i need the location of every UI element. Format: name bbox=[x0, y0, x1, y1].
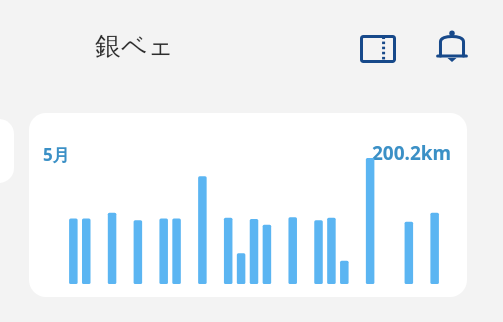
staticText: 5月 bbox=[43, 143, 70, 166]
button[interactable]: Diary bbox=[352, 23, 404, 75]
button[interactable]: Notifications bbox=[426, 21, 478, 73]
button[interactable] bbox=[0, 119, 14, 183]
staticText: 200.2km bbox=[372, 140, 452, 166]
staticText: 銀ベェ bbox=[95, 30, 175, 63]
button[interactable]: 5月 bbox=[29, 113, 467, 297]
